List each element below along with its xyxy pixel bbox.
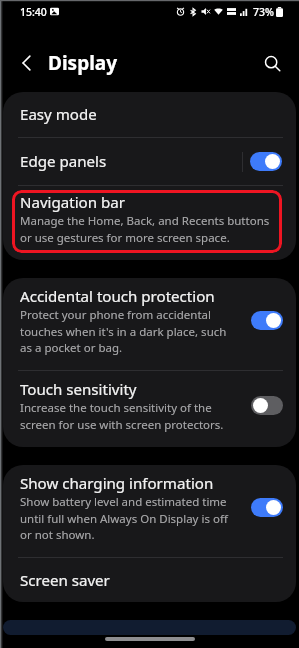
staticText: Show charging information (20, 473, 214, 494)
staticText: Protect your phone from accidental touch… (20, 307, 238, 355)
button[interactable]: Navigation bar (3, 186, 296, 260)
staticText: Display (48, 50, 118, 76)
button[interactable]: Switch on (250, 152, 282, 171)
staticText: Navigation bar (20, 192, 125, 213)
button[interactable]: Accidental touch protection (3, 278, 296, 370)
button[interactable]: Switch on (251, 311, 283, 330)
staticText: Accidental touch protection (20, 286, 215, 307)
staticText: Easy mode (20, 104, 97, 125)
staticText: Screen saver (20, 570, 110, 591)
button[interactable]: Search (257, 48, 287, 78)
staticText: 73% (253, 5, 274, 19)
button[interactable]: Switch off (251, 396, 283, 415)
button[interactable]: Show charging information (3, 465, 296, 557)
button[interactable]: Easy mode (3, 92, 296, 137)
button[interactable]: Touch sensitivity (3, 371, 296, 447)
button[interactable]: Edge panels (3, 138, 296, 185)
staticText: Manage the Home, Back, and Recents butto… (20, 213, 280, 245)
button[interactable]: Back (12, 48, 42, 78)
button[interactable]: Screen saver (3, 558, 296, 602)
staticText: Increase the touch sensitivity of the sc… (20, 400, 238, 432)
button[interactable]: Switch on (251, 498, 283, 517)
staticText: Edge panels (20, 151, 107, 172)
staticText: Show battery level and estimated time un… (20, 494, 238, 542)
staticText: 15:40 (20, 5, 47, 19)
staticText: Touch sensitivity (20, 379, 137, 400)
